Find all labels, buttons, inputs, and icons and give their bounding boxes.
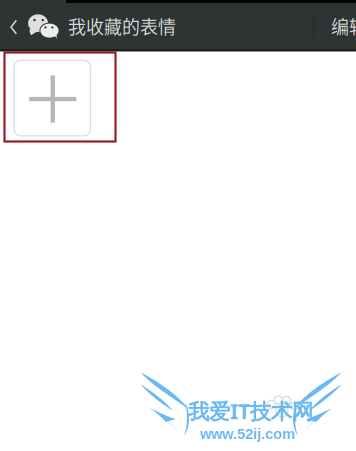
button[interactable]: Back xyxy=(0,0,66,49)
staticText: 我爱IT技术网 xyxy=(188,396,313,426)
staticText: 我收藏的表情 xyxy=(68,13,176,39)
staticText: www.52ij.com xyxy=(200,426,295,442)
staticText: 编辑 xyxy=(331,13,356,39)
button[interactable]: 编辑 xyxy=(331,1,356,50)
button[interactable]: Add sticker xyxy=(14,60,90,136)
